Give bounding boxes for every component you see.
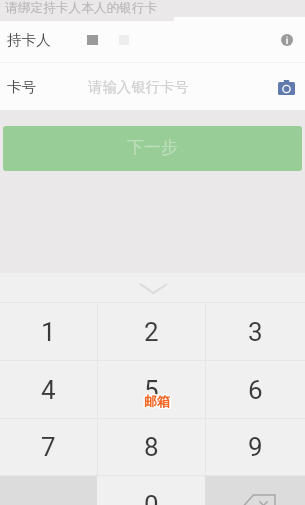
button[interactable]: 7 <box>0 419 97 475</box>
staticText: 邮箱 <box>143 393 169 409</box>
staticText: 请输入银行卡号 <box>88 78 189 96</box>
staticText: 0 <box>144 490 159 505</box>
staticText: 9 <box>248 432 263 462</box>
button[interactable]: 9 <box>206 419 305 475</box>
staticText: 5 <box>144 375 159 405</box>
button[interactable]: Delete <box>205 476 305 505</box>
staticText: 8 <box>144 432 159 462</box>
staticText: 邮箱 <box>144 394 170 410</box>
staticText: 2 <box>144 317 159 347</box>
staticText: 邮箱 <box>143 394 169 410</box>
button[interactable]: 4 <box>0 361 97 418</box>
button[interactable]: 1 <box>0 303 97 360</box>
staticText: 邮箱 <box>145 392 171 408</box>
button[interactable]: 3 <box>206 303 305 360</box>
staticText: 1 <box>41 317 56 347</box>
staticText: 请绑定持卡人本人的银行卡 <box>5 0 158 16</box>
staticText: 邮箱 <box>144 393 170 409</box>
staticText: 邮箱 <box>145 393 171 409</box>
staticText: 邮箱 <box>143 392 169 408</box>
staticText: 下一步 <box>127 137 178 158</box>
staticText: 3 <box>248 317 263 347</box>
button[interactable]: 2 <box>98 303 205 360</box>
button[interactable]: 5 <box>98 361 205 418</box>
button[interactable]: 下一步 <box>3 126 302 171</box>
button[interactable]: 8 <box>98 419 205 475</box>
button[interactable]: 卡号 <box>0 63 305 110</box>
staticText: 邮箱 <box>145 394 171 410</box>
button[interactable]: 0 <box>97 476 205 505</box>
button[interactable]: 持卡人 <box>0 17 305 62</box>
button[interactable]: 6 <box>206 361 305 418</box>
staticText: 4 <box>41 375 56 405</box>
staticText: 邮箱 <box>144 392 170 408</box>
staticText: 卡号 <box>7 78 37 96</box>
staticText: 6 <box>248 375 263 405</box>
button[interactable]: Hide keyboard <box>131 275 175 301</box>
button[interactable]: Info <box>275 28 299 52</box>
staticText: 持卡人 <box>7 31 51 49</box>
staticText: 7 <box>41 432 56 462</box>
button[interactable]: Scan card <box>273 74 299 100</box>
